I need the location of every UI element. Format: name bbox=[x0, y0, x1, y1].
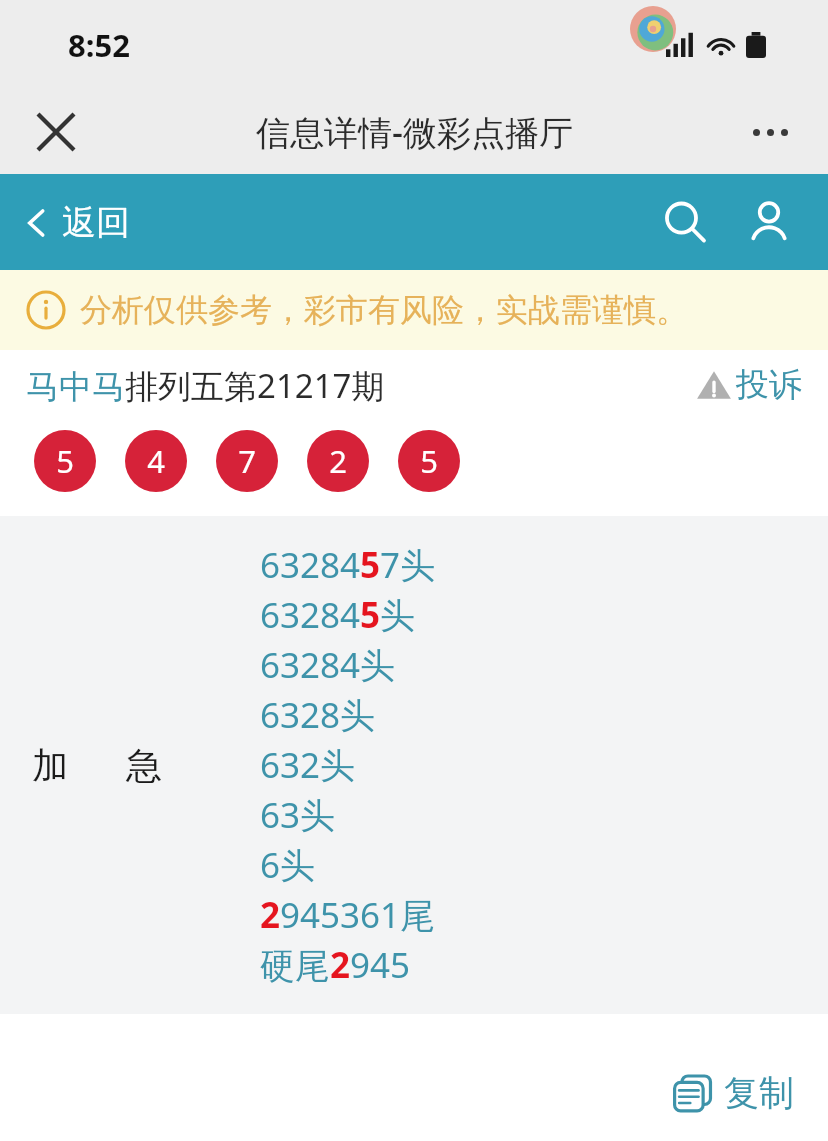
button[interactable]: Close bbox=[24, 100, 88, 164]
staticText: 5 bbox=[420, 440, 438, 482]
staticText: 6头 bbox=[260, 841, 316, 889]
button[interactable]: Search bbox=[652, 189, 718, 255]
button[interactable]: Account bbox=[736, 189, 802, 255]
staticText: 2 bbox=[329, 440, 347, 482]
staticText: 632845头 bbox=[260, 591, 416, 639]
button[interactable]: 复制 bbox=[670, 1070, 794, 1116]
staticText: 马中马排列五第21217期 bbox=[26, 363, 385, 408]
staticText: 投诉 bbox=[736, 364, 802, 406]
staticText: 加 bbox=[32, 743, 68, 788]
staticText: 63284头 bbox=[260, 641, 396, 689]
staticText: 信息详情-微彩点播厅 bbox=[256, 109, 573, 155]
staticText: 4 bbox=[147, 440, 165, 482]
staticText: 63头 bbox=[260, 791, 336, 839]
staticText: 复制 bbox=[724, 1071, 794, 1115]
staticText: 6328457头 bbox=[260, 541, 436, 589]
staticText: 8:52 bbox=[68, 24, 130, 66]
staticText: 返回 bbox=[62, 201, 130, 244]
staticText: 急 bbox=[126, 743, 162, 788]
staticText: 632头 bbox=[260, 741, 356, 789]
button[interactable]: 投诉 bbox=[696, 364, 802, 406]
staticText: 硬尾2945 bbox=[260, 941, 411, 989]
staticText: 6328头 bbox=[260, 691, 376, 739]
staticText: 2945361尾 bbox=[260, 891, 436, 939]
staticText: 7 bbox=[238, 440, 256, 482]
button[interactable]: More options bbox=[738, 100, 802, 164]
staticText: 5 bbox=[56, 440, 74, 482]
button[interactable]: 返回 bbox=[24, 201, 130, 244]
staticText: 分析仅供参考，彩市有风险，实战需谨慎。 bbox=[80, 290, 688, 330]
